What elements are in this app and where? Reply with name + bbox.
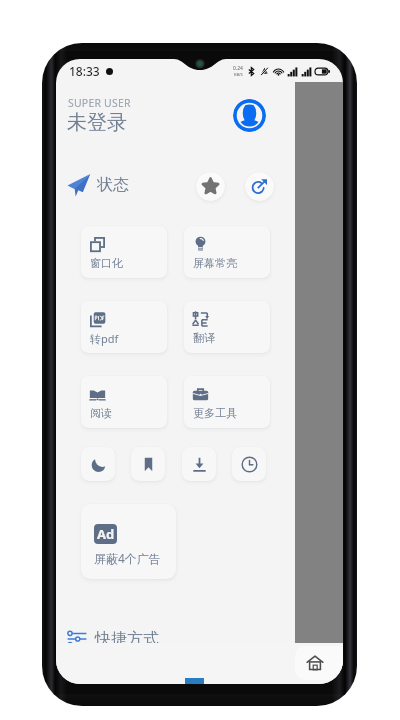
staticText: SUPER USER (68, 96, 131, 110)
staticText: 状态 (97, 175, 129, 195)
button[interactable]: Account (233, 99, 266, 132)
staticText: 更多工具 (193, 406, 237, 420)
button[interactable]: History (232, 447, 266, 481)
staticText: 18:33 (69, 63, 100, 79)
button[interactable]: 快捷方式 (67, 626, 159, 652)
button[interactable]: Favorite (196, 172, 225, 201)
staticText: Ad (97, 525, 115, 543)
button[interactable]: 状态 (67, 170, 129, 200)
staticText: KB/S (234, 72, 243, 77)
button[interactable]: 窗口化 (81, 226, 167, 278)
button[interactable]: Refresh (245, 172, 274, 201)
button[interactable]: 更多工具 (184, 376, 270, 428)
button[interactable]: 屏幕常亮 (184, 226, 270, 278)
button[interactable]: 阅读 (81, 376, 167, 428)
button[interactable]: Ad (81, 504, 176, 579)
button[interactable]: 转pdf (81, 301, 167, 353)
staticText: 阅读 (90, 406, 112, 420)
button[interactable]: Downloads (182, 447, 216, 481)
button[interactable]: 翻译 (184, 301, 270, 353)
button[interactable]: Bookmarks (131, 447, 165, 481)
staticText: 转pdf (90, 331, 119, 346)
staticText: 窗口化 (90, 256, 123, 270)
button[interactable]: Home (295, 646, 343, 680)
staticText: 翻译 (193, 331, 215, 345)
staticText: 0.24 (233, 65, 243, 72)
button[interactable]: Dark mode (81, 447, 115, 481)
staticText: 快捷方式 (95, 629, 159, 649)
staticText: 屏幕常亮 (193, 256, 237, 270)
staticText: 未登录 (67, 110, 127, 135)
staticText: 屏蔽4个广告 (94, 550, 161, 566)
